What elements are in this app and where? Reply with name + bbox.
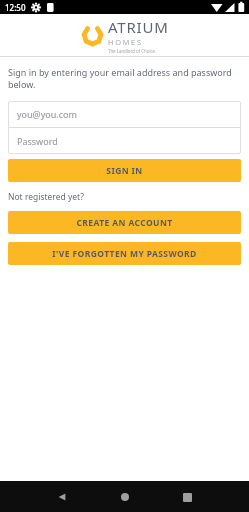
staticText: Not registered yet? (8, 191, 84, 203)
staticText: SIGN IN (106, 165, 143, 177)
staticText: Password (17, 135, 58, 147)
staticText: HOMES (108, 37, 143, 47)
staticText: Sign in by entering your email address a… (8, 66, 241, 91)
staticText: you@you.com (17, 108, 77, 120)
staticText: ATRIUM (108, 17, 169, 37)
staticText: I'VE FORGOTTEN MY PASSWORD (52, 248, 197, 260)
staticText: CREATE AN ACCOUNT (76, 217, 173, 229)
button[interactable]: Password (8, 128, 241, 154)
button[interactable]: CREATE AN ACCOUNT (8, 211, 241, 234)
staticText: 12:50 (5, 2, 26, 13)
button[interactable]: I'VE FORGOTTEN MY PASSWORD (8, 242, 241, 265)
button[interactable]: Recent apps (176, 486, 198, 508)
button[interactable]: SIGN IN (8, 159, 241, 182)
button[interactable]: you@you.com (8, 101, 241, 127)
button[interactable]: Home (114, 486, 136, 508)
staticText: The Landlord of Choice (108, 48, 156, 54)
button[interactable]: Back (51, 486, 73, 508)
